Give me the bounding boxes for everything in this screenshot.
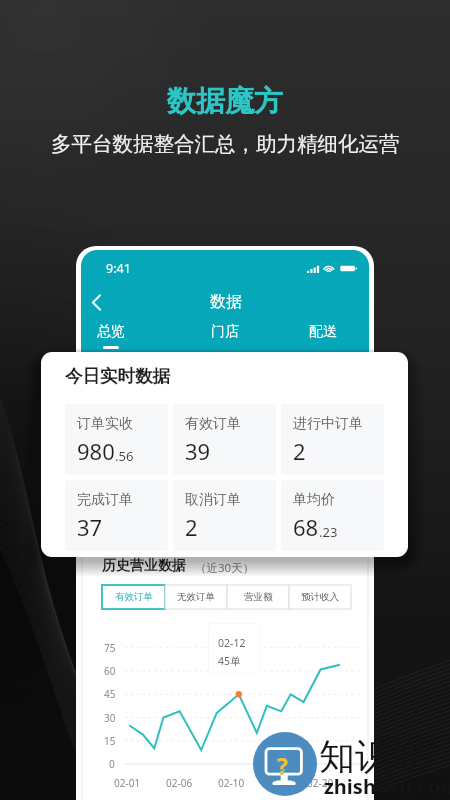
button[interactable]: 门店: [199, 323, 251, 349]
button[interactable]: 取消订单: [173, 480, 276, 551]
button[interactable]: 预计收入: [289, 585, 351, 609]
button[interactable]: 进行中订单: [281, 404, 384, 475]
staticText: ?: [277, 750, 288, 781]
button[interactable]: 有效订单: [102, 585, 165, 609]
staticText: 30: [104, 711, 116, 725]
staticText: 02-20: [307, 776, 334, 790]
staticText: 02-10: [218, 776, 245, 790]
button[interactable]: 无效订单: [165, 585, 227, 609]
staticText: 数据魔方: [167, 83, 283, 120]
button[interactable]: 单均价: [281, 480, 384, 551]
button[interactable]: 订单实收: [65, 404, 168, 475]
staticText: 02-01: [114, 776, 141, 790]
staticText: 60: [104, 664, 116, 678]
staticText: 知识屋: [319, 734, 427, 779]
staticText: 0: [109, 757, 115, 771]
staticText: 02-06: [166, 776, 193, 790]
staticText: 45单: [218, 654, 241, 668]
staticText: 有效订单: [115, 591, 153, 603]
staticText: 多平台数据整合汇总，助力精细化运营: [51, 131, 400, 157]
staticText: 68: [293, 512, 319, 542]
staticText: 单均价: [293, 491, 335, 509]
staticText: 营业额: [244, 591, 273, 603]
staticText: ®: [426, 737, 436, 753]
button[interactable]: 有效订单: [173, 404, 276, 475]
button[interactable]: Back: [81, 286, 113, 319]
staticText: 15: [104, 734, 116, 748]
staticText: .56: [115, 447, 134, 465]
staticText: 取消订单: [185, 491, 241, 509]
button[interactable]: 营业额: [227, 585, 289, 609]
button[interactable]: 配送: [297, 323, 349, 349]
staticText: .23: [319, 523, 338, 541]
staticText: 2: [293, 436, 306, 466]
button[interactable]: 总览: [85, 323, 137, 349]
staticText: 39: [185, 436, 211, 466]
button[interactable]: 完成订单: [65, 480, 168, 551]
staticText: 02-12: [218, 636, 246, 650]
staticText: 今日实时数据: [65, 365, 170, 387]
staticText: 37: [77, 512, 103, 542]
staticText: 有效订单: [185, 415, 241, 433]
staticText: 配送: [309, 323, 337, 341]
staticText: 预计收入: [301, 591, 339, 603]
staticText: 45: [104, 687, 116, 701]
staticText: 75: [104, 641, 116, 655]
staticText: 2: [185, 512, 198, 542]
staticText: zhishiwu.com: [324, 773, 450, 800]
staticText: 总览: [97, 323, 125, 341]
staticText: 订单实收: [77, 415, 133, 433]
staticText: 进行中订单: [293, 415, 363, 433]
staticText: （近30天）: [195, 560, 255, 576]
staticText: 980: [77, 436, 115, 466]
staticText: 历史营业数据: [102, 557, 186, 575]
staticText: 9:41: [106, 260, 131, 277]
staticText: 完成订单: [77, 491, 133, 509]
staticText: 无效订单: [177, 591, 215, 603]
button[interactable]: zhishiwu.com watermark: [253, 732, 317, 796]
staticText: 数据: [210, 292, 242, 312]
staticText: 门店: [211, 323, 239, 341]
